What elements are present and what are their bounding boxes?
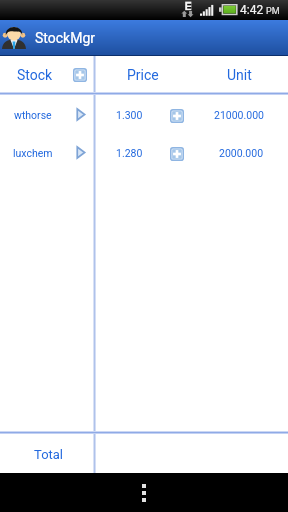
staticText: Stock xyxy=(17,67,53,83)
staticText: 1.300 xyxy=(116,109,143,121)
button[interactable]: luxchem xyxy=(0,134,288,172)
staticText: 4:42 xyxy=(240,3,264,17)
button[interactable]: Stock xyxy=(0,56,69,93)
button[interactable]: Add transaction xyxy=(165,142,188,165)
button[interactable]: wthorse xyxy=(0,96,288,134)
button[interactable]: App icon xyxy=(2,24,26,49)
staticText: PM xyxy=(266,6,280,17)
button[interactable]: wthorse xyxy=(0,96,94,134)
button[interactable]: More options xyxy=(132,474,156,512)
staticText: wthorse xyxy=(14,109,52,121)
staticText: Unit xyxy=(227,67,252,83)
button[interactable]: Add stock xyxy=(69,64,91,86)
staticText: 2000.000 xyxy=(219,147,264,159)
staticText: 21000.000 xyxy=(214,109,264,121)
staticText: StockMgr xyxy=(35,30,95,46)
button[interactable]: Add transaction xyxy=(165,104,188,127)
button[interactable]: Unit xyxy=(191,56,288,93)
button[interactable]: Total xyxy=(0,435,98,473)
button[interactable]: Price xyxy=(94,56,191,93)
staticText: Price xyxy=(127,67,159,83)
staticText: 1.280 xyxy=(116,147,143,159)
staticText: Total xyxy=(34,447,64,462)
staticText: luxchem xyxy=(13,147,53,159)
button[interactable]: luxchem xyxy=(0,134,94,172)
